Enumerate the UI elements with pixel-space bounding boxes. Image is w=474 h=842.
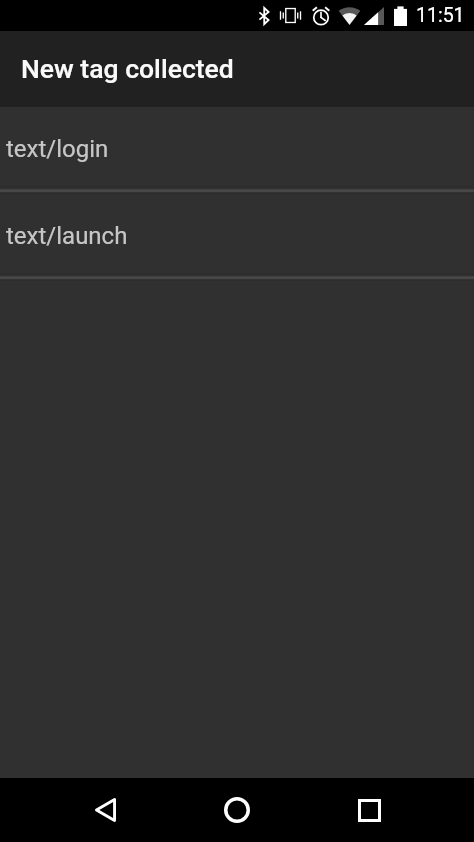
staticText: text/launch: [6, 222, 128, 250]
staticText: text/login: [6, 135, 109, 163]
button[interactable]: New tag collected: [0, 31, 474, 107]
button[interactable]: Home: [196, 778, 278, 842]
button[interactable]: text/login: [0, 107, 474, 186]
button[interactable]: Back: [64, 778, 146, 842]
button[interactable]: text/launch: [0, 194, 474, 273]
button[interactable]: Recent apps: [328, 778, 410, 842]
staticText: 11:51: [416, 4, 465, 27]
staticText: New tag collected: [21, 53, 234, 84]
